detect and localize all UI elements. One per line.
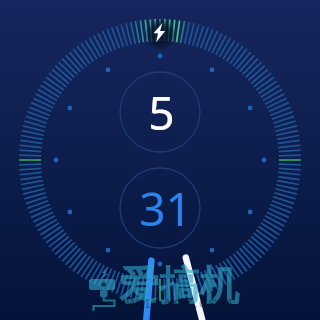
staticText: WWW.IGAO7.COM <box>98 294 235 312</box>
button[interactable]: 31 <box>125 168 205 248</box>
button[interactable]: Stopwatch watch face <box>0 0 320 320</box>
staticText: 爱搞机 <box>119 260 239 310</box>
staticText: 5 <box>148 81 175 144</box>
button[interactable]: 5 <box>121 72 201 152</box>
staticText: 31 <box>139 177 192 240</box>
